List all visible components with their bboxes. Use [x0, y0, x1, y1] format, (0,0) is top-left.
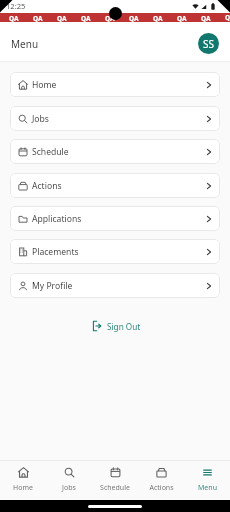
staticText: QA — [9, 14, 19, 23]
staticText: Home — [13, 483, 33, 493]
staticText: Home — [32, 79, 57, 91]
button[interactable]: Jobs — [46, 461, 92, 493]
staticText: QA — [177, 14, 187, 23]
staticText: Schedule — [32, 146, 69, 158]
button[interactable]: Placements — [10, 239, 220, 264]
button[interactable]: Applications — [10, 206, 220, 231]
staticText: Menu — [11, 37, 39, 51]
staticText: Actions — [32, 180, 62, 192]
button[interactable]: Jobs — [10, 106, 220, 131]
staticText: Applications — [32, 213, 82, 225]
staticText: Actions — [149, 483, 174, 493]
staticText: My Profile — [32, 280, 73, 292]
button[interactable]: Schedule — [10, 139, 220, 164]
staticText: QA — [33, 14, 43, 23]
staticText: Schedule — [100, 483, 130, 493]
staticText: Menu — [198, 483, 217, 493]
button[interactable]: Home — [10, 72, 220, 97]
staticText: QA — [201, 14, 211, 23]
staticText: 12:25 — [6, 1, 26, 11]
button[interactable]: Schedule — [92, 461, 138, 493]
button[interactable]: Actions — [10, 173, 220, 198]
button[interactable]: Actions — [138, 461, 184, 493]
staticText: QA — [81, 14, 91, 23]
staticText: QA — [153, 14, 163, 23]
staticText: SS — [203, 37, 214, 51]
staticText: QA — [225, 13, 230, 23]
staticText: QA — [105, 14, 115, 23]
staticText: QA — [57, 14, 67, 23]
button[interactable]: Sign Out — [87, 316, 145, 336]
button[interactable]: My Profile — [10, 273, 220, 298]
staticText: Sign Out — [107, 321, 141, 332]
staticText: Jobs — [62, 483, 76, 493]
button[interactable]: Profile — [198, 33, 219, 54]
staticText: Placements — [32, 246, 79, 258]
staticText: Jobs — [32, 113, 49, 125]
staticText: QA — [129, 14, 139, 23]
button[interactable]: Home — [0, 461, 46, 493]
button[interactable]: Menu — [184, 461, 230, 493]
